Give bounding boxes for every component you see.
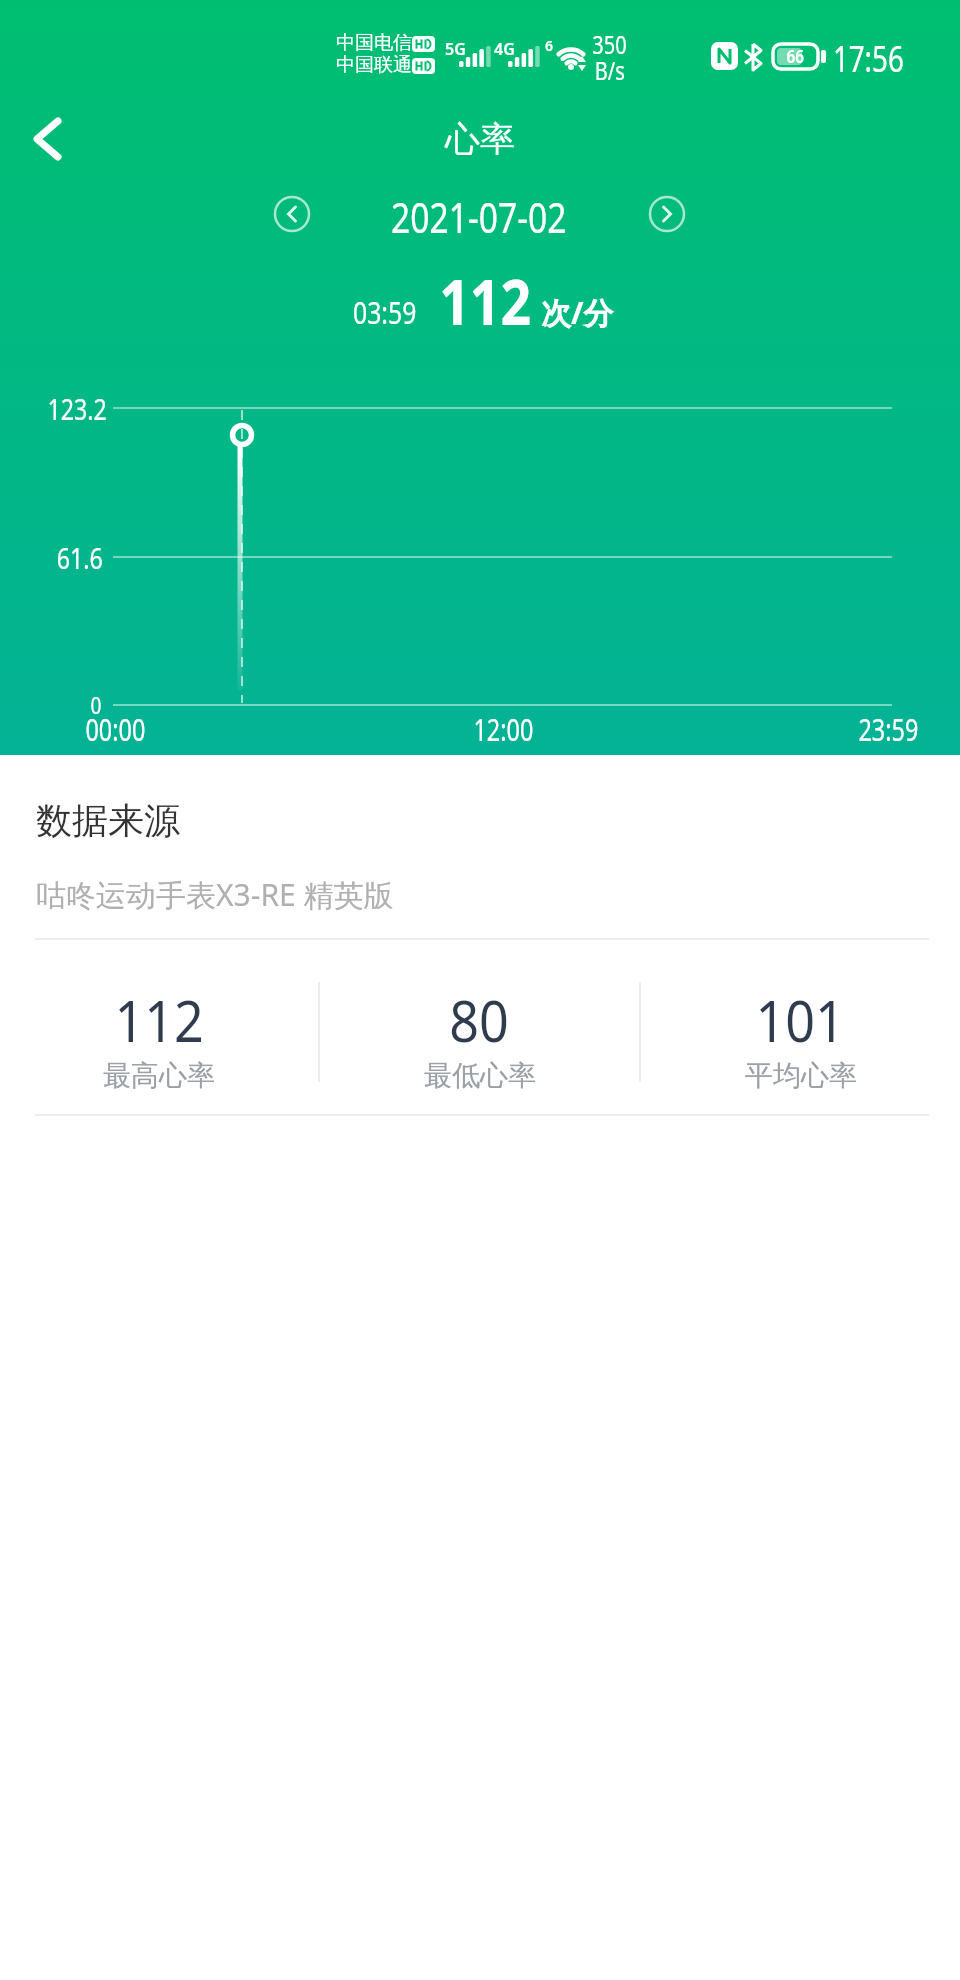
button[interactable] [17, 109, 77, 169]
button[interactable]: 80 [320, 982, 639, 1090]
staticText: 2021-07-02 [391, 188, 567, 245]
staticText: 咕咚运动手表X3-RE 精英版 [36, 874, 394, 915]
staticText: 350 [592, 27, 627, 61]
staticText: 17:56 [833, 32, 904, 82]
staticText: 03:59 [353, 291, 417, 333]
staticText: 中国联通 [336, 53, 412, 77]
staticText: 12:00 [473, 709, 534, 750]
button[interactable]: 112 [0, 982, 318, 1090]
staticText: 66 [787, 44, 804, 69]
staticText: 心率 [445, 117, 515, 161]
staticText: 80 [449, 982, 510, 1058]
staticText: 最高心率 [103, 1058, 215, 1090]
staticText: 00:00 [85, 709, 146, 750]
staticText: 最低心率 [424, 1058, 536, 1090]
button[interactable] [642, 189, 692, 239]
staticText: 112 [439, 258, 532, 344]
staticText: 平均心率 [745, 1058, 857, 1090]
staticText: 61.6 [57, 538, 103, 577]
staticText: 0 [90, 688, 102, 721]
button[interactable] [267, 189, 317, 239]
staticText: 123.2 [47, 389, 107, 428]
button[interactable]: 101 [641, 982, 960, 1090]
staticText: 中国电信 [336, 31, 412, 55]
staticText: 23:59 [858, 709, 919, 750]
staticText: 数据来源 [36, 798, 180, 843]
staticText: 4G [494, 38, 515, 60]
staticText: 112 [114, 982, 205, 1058]
staticText: 101 [755, 982, 846, 1058]
staticText: 5G [445, 38, 466, 60]
staticText: 6 [545, 36, 554, 55]
staticText: 次/分 [541, 292, 614, 333]
staticText: B/s [595, 53, 625, 87]
